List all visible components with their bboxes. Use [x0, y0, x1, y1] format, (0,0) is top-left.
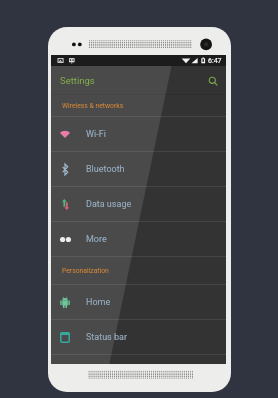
button[interactable]: Search [200, 68, 226, 94]
button[interactable]: More [51, 222, 226, 257]
staticText: More [86, 234, 107, 245]
button[interactable]: Bluetooth [51, 152, 226, 187]
button[interactable]: Wi-Fi [51, 117, 226, 152]
staticText: Data usage [86, 199, 132, 210]
staticText: Personalization [62, 267, 109, 275]
button[interactable]: Settings [51, 66, 226, 95]
staticText: Settings [60, 75, 95, 86]
staticText: Status bar [86, 332, 127, 343]
staticText: 6:47 [208, 57, 222, 65]
button[interactable]: Data usage [51, 187, 226, 222]
button[interactable]: Status bar [51, 320, 226, 355]
button[interactable]: Home [51, 285, 226, 320]
staticText: Home [86, 297, 111, 308]
staticText: Bluetooth [86, 164, 125, 175]
staticText: Wi-Fi [86, 129, 106, 140]
staticText: Wireless & networks [62, 102, 124, 110]
